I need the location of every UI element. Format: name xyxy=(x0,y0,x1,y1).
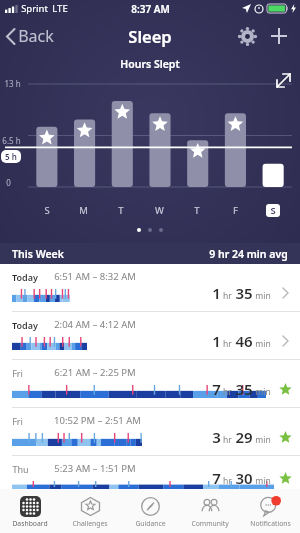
staticText: S xyxy=(270,204,276,217)
staticText: Today xyxy=(12,319,38,331)
staticText: Sleep xyxy=(128,25,172,47)
staticText: 5:23 AM – 1:51 PM xyxy=(54,462,136,475)
staticText: min xyxy=(255,386,271,398)
staticText: hr xyxy=(223,434,232,446)
button[interactable]: Today xyxy=(0,312,300,359)
button[interactable]: Dashboard xyxy=(0,489,60,533)
staticText: hr xyxy=(223,475,232,487)
button[interactable]: Add xyxy=(264,21,294,51)
staticText: hr xyxy=(223,338,232,350)
staticText: 0 xyxy=(6,177,11,188)
button[interactable]: Settings xyxy=(232,21,262,51)
staticText: M xyxy=(79,204,88,217)
staticText: Hours Slept xyxy=(120,57,180,71)
staticText: 46 xyxy=(235,331,253,351)
staticText: Notifications xyxy=(250,519,291,528)
button[interactable]: Notifications xyxy=(240,489,300,533)
staticText: 10:52 PM – 2:51 AM xyxy=(54,414,141,427)
staticText: 13 h xyxy=(4,78,21,89)
staticText: 35 xyxy=(235,379,253,399)
staticText: Community xyxy=(191,519,229,528)
button[interactable]: Challenges xyxy=(60,489,120,533)
staticText: Thu xyxy=(12,463,29,475)
staticText: Today xyxy=(12,271,38,283)
staticText: 30 xyxy=(235,468,253,488)
staticText: T xyxy=(118,204,124,217)
staticText: 1 xyxy=(212,283,221,303)
staticText: LTE xyxy=(52,2,68,15)
button[interactable]: Back xyxy=(0,21,62,51)
staticText: 8:37 AM xyxy=(131,2,170,16)
button[interactable]: Fri xyxy=(0,360,300,407)
staticText: 1 xyxy=(212,331,221,351)
staticText: min xyxy=(255,290,271,302)
staticText: min xyxy=(255,338,271,350)
staticText: T xyxy=(194,204,200,217)
button[interactable]: Expand chart xyxy=(272,69,294,91)
button[interactable]: Community xyxy=(180,489,240,533)
staticText: hr xyxy=(223,386,232,398)
staticText: Back xyxy=(18,25,54,47)
staticText: Fri xyxy=(12,415,23,427)
staticText: Sprint xyxy=(21,2,48,15)
staticText: 35 xyxy=(235,283,253,303)
staticText: Dashboard xyxy=(12,519,48,528)
staticText: min xyxy=(255,475,271,487)
staticText: min xyxy=(255,434,271,446)
staticText: 29 xyxy=(235,427,253,447)
button[interactable]: Guidance xyxy=(120,489,180,533)
staticText: Challenges xyxy=(72,519,108,528)
staticText: W xyxy=(155,204,164,217)
staticText: S xyxy=(44,204,50,217)
staticText: 7 xyxy=(212,379,221,399)
staticText: 9 hr 24 min avg xyxy=(209,247,288,261)
staticText: hr xyxy=(223,290,232,302)
button[interactable]: Fri xyxy=(0,408,300,455)
staticText: This Week xyxy=(12,247,64,261)
staticText: 6.5 h xyxy=(2,135,21,146)
staticText: 5 h xyxy=(5,151,17,162)
button[interactable]: Thu xyxy=(0,456,300,489)
staticText: 3 xyxy=(212,427,221,447)
staticText: F xyxy=(233,204,238,217)
staticText: Fri xyxy=(12,367,23,379)
staticText: 7 xyxy=(212,468,221,488)
staticText: 6:21 AM – 2:25 PM xyxy=(54,366,136,379)
staticText: 6:51 AM – 8:32 AM xyxy=(54,270,136,283)
staticText: 2:04 AM – 4:12 AM xyxy=(54,318,136,331)
button[interactable]: Today xyxy=(0,264,300,311)
staticText: Guidance xyxy=(135,519,166,528)
